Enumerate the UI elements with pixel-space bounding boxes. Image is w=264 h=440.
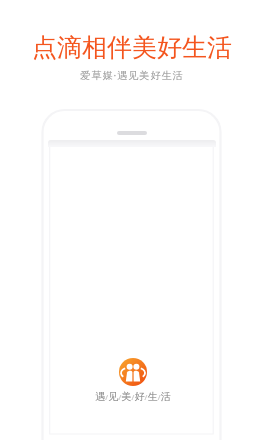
staticText: 点滴相伴美好生活	[32, 32, 232, 63]
staticText: 爱草媒·遇见美好生活	[80, 68, 184, 82]
staticText: 遇/见/美/好/生/活	[95, 390, 171, 403]
button[interactable]: App logo	[119, 358, 147, 386]
